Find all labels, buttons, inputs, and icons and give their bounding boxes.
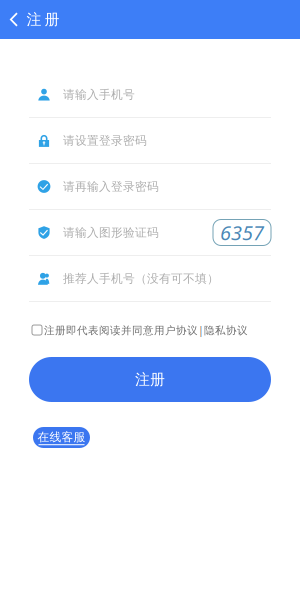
button[interactable]: 图形验证码 6357 (213, 219, 271, 245)
staticText: 在线客服 (37, 430, 85, 444)
button[interactable]: 注册 (29, 357, 271, 402)
button[interactable]: 返回 (0, 0, 71, 39)
staticText: 请输入图形验证码 (63, 225, 159, 240)
staticText: 注 册 (26, 10, 59, 29)
staticText: 注册即代表阅读并同意用户协议|隐私协议 (44, 323, 248, 337)
staticText: 6357 (220, 219, 264, 246)
staticText: 注册 (135, 370, 165, 389)
staticText: 请再输入登录密码 (63, 179, 159, 194)
button[interactable]: 注册即代表阅读并同意用户协议|隐私协议 (32, 323, 248, 337)
staticText: 请输入手机号 (63, 87, 135, 102)
staticText: 请设置登录密码 (63, 133, 147, 148)
staticText: 推荐人手机号（没有可不填） (63, 271, 219, 286)
button[interactable]: 在线客服 (33, 427, 90, 448)
